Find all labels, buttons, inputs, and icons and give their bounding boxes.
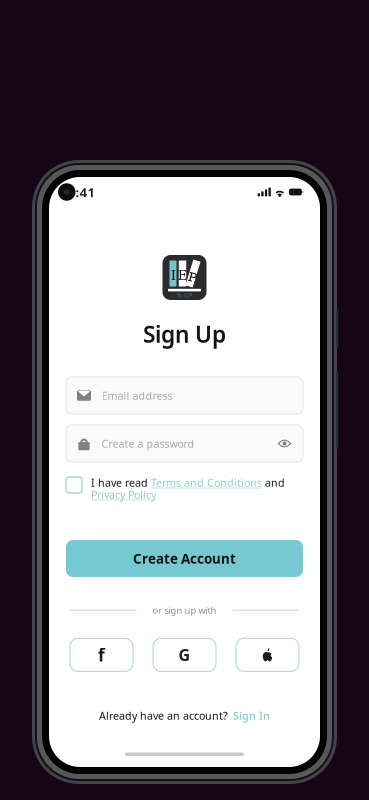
staticText: Privacy Policy [91,487,156,502]
button[interactable]: Sign up with Facebook [70,638,133,671]
button[interactable]: Create a password [66,425,303,462]
staticText: Sign Up [143,319,226,349]
staticText: Already have an account? [99,708,228,723]
button[interactable]: Sign up with Google [153,638,216,671]
staticText: f [98,643,105,666]
staticText: By IEP [177,292,192,299]
button[interactable]: Create Account [66,540,303,577]
staticText: E [178,268,188,283]
staticText: or sign up with [152,604,216,616]
button[interactable]: Sign In [233,708,270,723]
staticText: Sign In [233,708,270,723]
staticText: I have read [91,475,151,490]
button[interactable]: Sign up with Apple [236,638,299,671]
staticText: Create Account [133,550,236,567]
staticText: Email address [101,388,172,403]
button[interactable]: Email address [66,377,303,414]
staticText: 9:41 [67,183,95,201]
button[interactable]: Agree to terms and conditions [66,477,82,493]
button[interactable]: Privacy Policy [91,487,156,502]
staticText: and [262,475,285,490]
button[interactable]: Terms and Conditions [151,475,262,490]
staticText: I [171,268,176,283]
staticText: G [178,644,190,665]
staticText: Terms and Conditions [151,475,262,490]
staticText: P [188,269,197,285]
staticText: Create a password [101,436,194,451]
